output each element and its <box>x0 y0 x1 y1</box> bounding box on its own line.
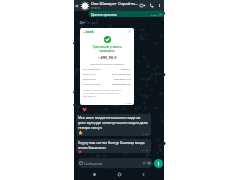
staticText: 2600 0000 1718 <box>114 78 131 81</box>
staticText: Сегодня <box>86 21 98 25</box>
staticText: Переказ на картку телефона <box>83 62 131 65</box>
button[interactable]: Profile photo <box>80 1 90 11</box>
staticText: Номер операції <box>83 83 101 86</box>
button[interactable]: Home <box>115 170 124 179</box>
staticText: в сети <box>91 6 100 10</box>
staticText: 00626340881173 <box>112 83 131 86</box>
staticText: Транзакцію успішно проведено <box>83 45 131 53</box>
button[interactable]: Voice call <box>147 1 156 10</box>
staticText: Дата та час <box>83 73 96 76</box>
button[interactable]: Улуусу жок сыгтан болтур Баштаар колдо а… <box>76 139 151 153</box>
staticText: 21:10 <box>142 148 149 151</box>
staticText: 21:09 <box>142 132 149 135</box>
staticText: bank <box>86 30 94 34</box>
staticText: Відправник <box>83 78 96 81</box>
button[interactable]: More options <box>156 2 163 9</box>
button[interactable]: Recent apps <box>90 170 99 179</box>
button[interactable]: Мен алып колдогон кызылын саадатка дагы … <box>76 114 151 136</box>
button[interactable]: Close <box>128 30 131 33</box>
staticText: Мен алып колдогон кызылын саадатка дагы … <box>78 115 149 130</box>
staticText: −495,90 ₴ <box>98 55 117 61</box>
staticText: 21:08 <box>125 101 132 104</box>
button[interactable]: Сегодня <box>79 19 99 26</box>
staticText: 03.01.2024 21:03 <box>112 73 131 76</box>
button[interactable]: bank <box>80 28 134 105</box>
staticText: Моє улюблений <box>83 68 101 71</box>
button[interactable]: Record voice message <box>154 159 163 168</box>
staticText: Сообщение <box>84 161 142 165</box>
button[interactable]: Сообщение <box>77 158 153 168</box>
staticText: Улуусу жок сыгтан болтур Баштаар колдо а… <box>78 140 145 150</box>
staticText: Переказ з картки на картку здійснено АТ … <box>83 89 131 98</box>
staticText: 21:07 <box>151 13 158 16</box>
staticText: Досить красиво <box>91 12 151 17</box>
button[interactable]: Back <box>139 170 148 179</box>
button[interactable]: Досить красиво <box>89 11 164 17</box>
button[interactable]: Back <box>74 3 80 9</box>
staticText: Акаунт 1 <box>121 68 131 71</box>
button[interactable]: Video call <box>138 1 147 10</box>
staticText: Оке Шакарег Спрайтик В... <box>91 1 138 6</box>
